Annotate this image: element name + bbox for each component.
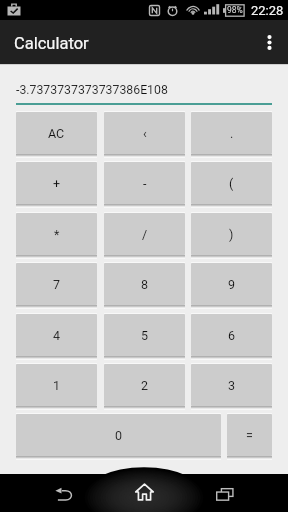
button[interactable]: + — [16, 162, 97, 204]
button[interactable]: * — [16, 213, 97, 255]
button[interactable]: AC — [16, 112, 97, 154]
button[interactable]: Back — [40, 474, 88, 512]
staticText: 22:28 — [251, 3, 284, 18]
button[interactable]: 9 — [191, 263, 272, 305]
button[interactable]: Home — [120, 474, 168, 512]
button[interactable]: = — [227, 414, 272, 456]
button[interactable]: - — [104, 162, 185, 204]
button[interactable]: 7 — [16, 263, 97, 305]
button[interactable]: Recent apps — [200, 474, 248, 512]
staticText: AC — [48, 126, 65, 141]
button[interactable]: 4 — [16, 314, 97, 356]
staticText: = — [246, 428, 253, 443]
staticText: / — [142, 227, 148, 242]
button[interactable]: / — [104, 213, 185, 255]
button[interactable]: 6 — [191, 314, 272, 356]
staticText: 9 — [228, 277, 236, 292]
button[interactable]: ( — [191, 162, 272, 204]
staticText: Calculator — [14, 34, 89, 53]
button[interactable]: ‹ — [104, 112, 185, 154]
button[interactable]: 2 — [104, 364, 185, 406]
button[interactable]: ) — [191, 213, 272, 255]
button[interactable]: 1 — [16, 364, 97, 406]
button[interactable]: 5 — [104, 314, 185, 356]
staticText: 0 — [115, 428, 123, 443]
button[interactable]: More options — [244, 20, 288, 64]
staticText: 3 — [228, 378, 236, 393]
staticText: -3.7373737373737386E108 — [16, 83, 168, 97]
button[interactable]: 8 — [104, 263, 185, 305]
staticText: 6 — [228, 328, 236, 343]
staticText: + — [53, 176, 61, 191]
staticText: ( — [229, 176, 234, 191]
staticText: - — [143, 176, 147, 191]
staticText: 4 — [53, 328, 61, 343]
staticText: 1 — [53, 378, 61, 393]
staticText: 7 — [53, 277, 61, 292]
button[interactable]: 0 — [16, 414, 221, 456]
button[interactable]: 3 — [191, 364, 272, 406]
staticText: 8 — [141, 277, 149, 292]
staticText: ) — [229, 227, 234, 242]
staticText: 2 — [141, 378, 149, 393]
staticText: ‹ — [143, 126, 147, 141]
staticText: 5 — [141, 328, 149, 343]
staticText: * — [54, 227, 60, 242]
staticText: 98% — [227, 5, 243, 15]
staticText: . — [230, 126, 234, 141]
